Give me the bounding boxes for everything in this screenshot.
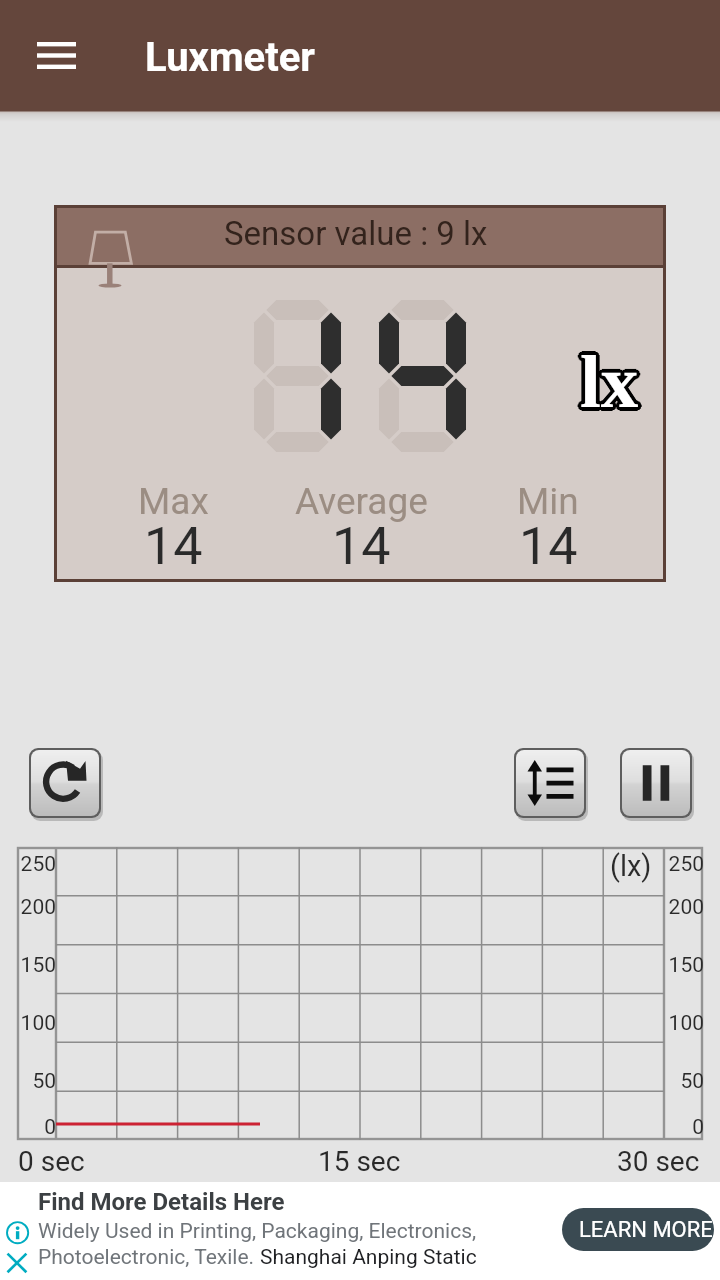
staticText: lx <box>579 341 638 424</box>
staticText: lx <box>581 343 640 426</box>
staticText: Luxmeter <box>145 34 315 81</box>
staticText: lx <box>583 338 642 421</box>
staticText: 150 <box>665 953 704 978</box>
staticText: 150 <box>17 953 56 978</box>
staticText: lx <box>578 342 637 425</box>
staticText: lx <box>577 340 636 423</box>
staticText: lx <box>582 339 641 422</box>
staticText: 14 <box>519 516 578 577</box>
staticText: lx <box>577 339 636 422</box>
staticText: lx <box>579 342 638 425</box>
staticText: lx <box>580 336 639 419</box>
button[interactable]: Pause <box>622 750 690 816</box>
staticText: (lx) <box>610 849 652 883</box>
staticText: 100 <box>665 1011 704 1036</box>
staticText: 250 <box>665 852 704 877</box>
staticText: lx <box>582 343 641 426</box>
staticText: lx <box>578 338 637 421</box>
staticText: lx <box>581 340 640 423</box>
staticText: lx <box>582 337 641 420</box>
staticText: lx <box>581 337 640 420</box>
staticText: 250 <box>17 852 56 877</box>
staticText: lx <box>582 340 641 423</box>
staticText: 0 sec <box>18 1145 85 1178</box>
staticText: lx <box>577 338 636 421</box>
button[interactable]: Change interval <box>516 750 584 816</box>
staticText: 50 <box>17 1069 56 1094</box>
staticText: lx <box>582 341 641 424</box>
staticText: lx <box>580 338 639 421</box>
staticText: lx <box>583 339 642 422</box>
staticText: Max <box>138 480 209 523</box>
staticText: lx <box>579 339 638 422</box>
staticText: lx <box>577 342 636 425</box>
staticText: 200 <box>665 895 704 920</box>
staticText: 15 sec <box>318 1145 401 1178</box>
staticText: lx <box>583 340 642 423</box>
staticText: lx <box>580 337 639 420</box>
staticText: lx <box>581 338 640 421</box>
staticText: lx <box>581 341 640 424</box>
staticText: lx <box>579 337 638 420</box>
staticText: 30 sec <box>617 1145 700 1178</box>
staticText: Find More Details Here <box>38 1188 285 1216</box>
staticText: lx <box>580 341 639 424</box>
button[interactable]: LEARN MORE <box>562 1208 714 1251</box>
staticText: lx <box>579 343 638 426</box>
staticText: 0 <box>665 1115 704 1140</box>
staticText: lx <box>578 343 637 426</box>
staticText: lx <box>583 342 642 425</box>
button[interactable]: Open navigation menu <box>20 19 92 91</box>
staticText: lx <box>578 340 637 423</box>
staticText: Average <box>295 480 428 523</box>
staticText: Photoelectronic, Texile. <box>38 1245 260 1270</box>
staticText: lx <box>580 342 639 425</box>
button[interactable]: Close ad <box>2 1248 33 1279</box>
staticText: Shanghai Anping Static <box>260 1245 477 1270</box>
staticText: lx <box>581 339 640 422</box>
staticText: lx <box>576 340 635 423</box>
staticText: lx <box>581 342 640 425</box>
staticText: 0 <box>17 1115 56 1140</box>
staticText: Min <box>517 480 579 523</box>
staticText: lx <box>578 341 637 424</box>
staticText: 14 <box>144 516 203 577</box>
staticText: lx <box>579 340 638 423</box>
staticText: lx <box>578 337 637 420</box>
staticText: 50 <box>665 1069 704 1094</box>
staticText: Widely Used in Printing, Packaging, Elec… <box>38 1219 477 1244</box>
staticText: 14 <box>332 516 391 577</box>
staticText: lx <box>580 340 639 423</box>
staticText: Sensor value : 9 lx <box>224 214 488 253</box>
staticText: lx <box>580 344 639 427</box>
staticText: 100 <box>17 1011 56 1036</box>
staticText: lx <box>582 342 641 425</box>
button[interactable]: Ad information <box>2 1217 33 1248</box>
staticText: lx <box>577 341 636 424</box>
staticText: lx <box>583 341 642 424</box>
staticText: 200 <box>17 895 56 920</box>
staticText: lx <box>578 339 637 422</box>
staticText: lx <box>582 338 641 421</box>
staticText: lx <box>579 338 638 421</box>
button[interactable]: Refresh <box>31 750 99 816</box>
staticText: LEARN MORE <box>579 1217 713 1243</box>
staticText: lx <box>580 339 639 422</box>
staticText: lx <box>580 343 639 426</box>
staticText: lx <box>584 340 643 423</box>
